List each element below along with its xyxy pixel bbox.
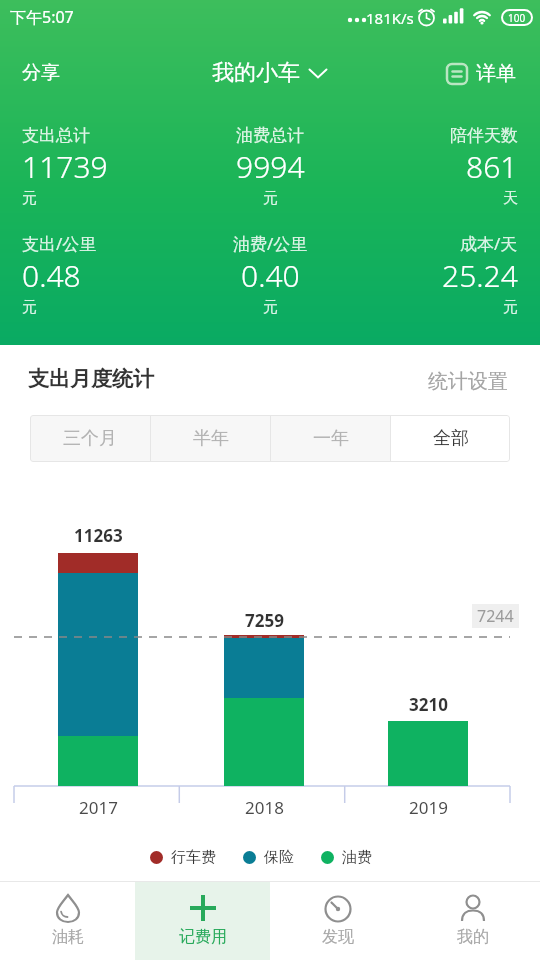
button[interactable]: 三个月 — [30, 415, 150, 462]
staticText: 统计设置 — [428, 369, 508, 394]
staticText: 元 — [263, 189, 278, 208]
button[interactable]: 发现 — [270, 882, 405, 960]
staticText: 我的 — [457, 927, 489, 947]
button[interactable]: 统计设置 — [428, 369, 508, 394]
staticText: 25.24 — [442, 255, 518, 296]
staticText: 分享 — [22, 61, 60, 85]
button[interactable]: 记费用 — [135, 882, 270, 960]
staticText: 2017 — [79, 796, 118, 819]
button[interactable]: 半年 — [151, 415, 270, 462]
button[interactable]: 我的小车 — [212, 59, 328, 87]
button[interactable]: 我的 — [405, 882, 540, 960]
staticText: 7244 — [477, 605, 514, 627]
staticText: 油耗 — [52, 927, 84, 947]
button[interactable]: 分享 — [22, 61, 60, 85]
staticText: 2018 — [245, 796, 284, 819]
staticText: 发现 — [322, 927, 354, 947]
staticText: 记费用 — [179, 927, 227, 947]
staticText: 861 — [466, 146, 518, 187]
button[interactable]: 详单 — [446, 61, 516, 86]
staticText: 0.40 — [241, 255, 300, 296]
staticText: 一年 — [313, 427, 349, 450]
staticText: 0.48 — [22, 255, 81, 296]
staticText: 3210 — [409, 693, 448, 716]
staticText: 2019 — [409, 796, 448, 819]
staticText: 油费/公里 — [233, 232, 308, 255]
button[interactable]: 油耗 — [0, 882, 135, 960]
button[interactable]: 全部 — [391, 415, 510, 462]
staticText: 天 — [503, 189, 518, 208]
staticText: 半年 — [193, 427, 229, 450]
staticText: 11739 — [22, 146, 108, 187]
staticText: 保险 — [264, 848, 294, 867]
staticText: 详单 — [476, 61, 516, 86]
staticText: 元 — [22, 298, 37, 317]
staticText: 元 — [503, 298, 518, 317]
staticText: 支出/公里 — [22, 232, 97, 255]
button[interactable]: 一年 — [271, 415, 390, 462]
staticText: 11263 — [74, 524, 123, 547]
staticText: 7259 — [245, 609, 284, 632]
staticText: 行车费 — [171, 848, 216, 867]
staticText: 9994 — [236, 146, 305, 187]
staticText: 元 — [22, 189, 37, 208]
staticText: 下午5:07 — [10, 6, 74, 28]
staticText: 支出月度统计 — [28, 366, 154, 392]
staticText: 全部 — [433, 427, 469, 450]
staticText: 油费 — [342, 848, 372, 867]
staticText: 油费总计 — [236, 125, 304, 146]
staticText: 元 — [263, 298, 278, 317]
staticText: 成本/天 — [460, 232, 518, 255]
staticText: 181K/s — [366, 8, 414, 28]
staticText: 支出总计 — [22, 125, 90, 146]
staticText: 100 — [508, 11, 526, 25]
staticText: 我的小车 — [212, 59, 300, 87]
staticText: 三个月 — [63, 427, 117, 450]
staticText: 陪伴天数 — [450, 125, 518, 146]
